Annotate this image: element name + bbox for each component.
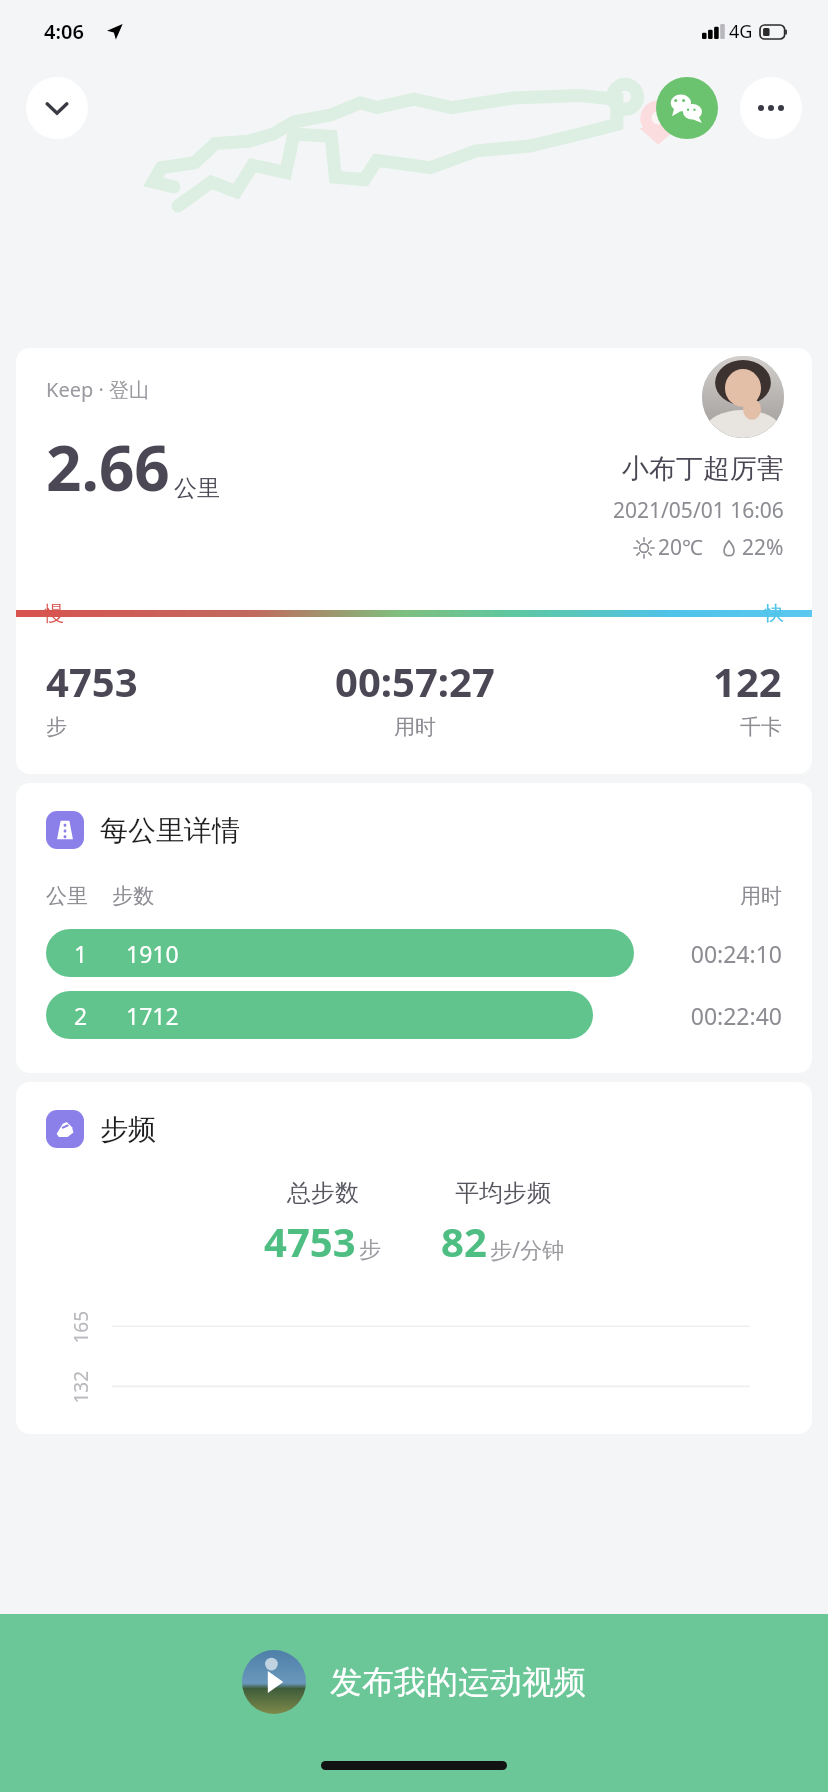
staticText: 122 <box>713 654 782 708</box>
button[interactable]: 2 <box>46 991 782 1039</box>
staticText: 4753 <box>264 1214 356 1268</box>
button[interactable]: User avatar <box>702 356 784 438</box>
staticText: 步 <box>359 1236 381 1264</box>
staticText: 千卡 <box>740 714 782 740</box>
staticText: 4:06 <box>44 18 84 45</box>
staticText: 2 <box>74 1000 88 1031</box>
staticText: 20℃ <box>658 533 703 562</box>
staticText: 4753 <box>46 654 138 708</box>
staticText: 每公里详情 <box>100 813 240 848</box>
staticText: 平均步频 <box>455 1178 551 1208</box>
staticText: 慢 <box>44 601 64 626</box>
staticText: 公里 <box>46 883 88 909</box>
staticText: 82 <box>441 1214 487 1268</box>
staticText: Keep · 登山 <box>46 376 149 403</box>
staticText: 公里 <box>174 474 220 503</box>
staticText: 132 <box>67 1370 93 1403</box>
staticText: 165 <box>67 1310 93 1343</box>
button[interactable]: 步频 <box>16 1082 812 1434</box>
button[interactable]: Share to WeChat <box>656 77 718 139</box>
button[interactable]: 每公里详情 <box>16 783 812 1073</box>
staticText: 步频 <box>100 1112 156 1147</box>
staticText: 用时 <box>740 883 782 909</box>
staticText: 2.66 <box>46 425 170 509</box>
button[interactable]: More options <box>740 77 802 139</box>
staticText: 22% <box>742 533 784 562</box>
staticText: 小布丁超厉害 <box>622 452 784 486</box>
staticText: 00:22:40 <box>652 1000 782 1031</box>
staticText: 4G <box>729 19 753 44</box>
staticText: 2021/05/01 16:06 <box>613 496 784 525</box>
staticText: 步数 <box>112 883 154 909</box>
button[interactable]: Collapse <box>26 77 88 139</box>
staticText: 用时 <box>394 714 436 740</box>
staticText: 步/分钟 <box>490 1234 565 1264</box>
button[interactable]: 发布我的运动视频 <box>0 1614 828 1792</box>
staticText: 1910 <box>126 938 179 969</box>
button[interactable]: 1 <box>46 929 782 977</box>
button[interactable]: Keep · 登山 <box>16 348 812 774</box>
staticText: 00:24:10 <box>652 938 782 969</box>
staticText: 快 <box>764 601 784 626</box>
staticText: 1 <box>74 938 88 969</box>
staticText: 发布我的运动视频 <box>330 1662 586 1702</box>
staticText: 1712 <box>126 1000 179 1031</box>
staticText: 00:57:27 <box>335 654 495 708</box>
staticText: 总步数 <box>287 1178 359 1208</box>
staticText: 步 <box>46 714 67 740</box>
